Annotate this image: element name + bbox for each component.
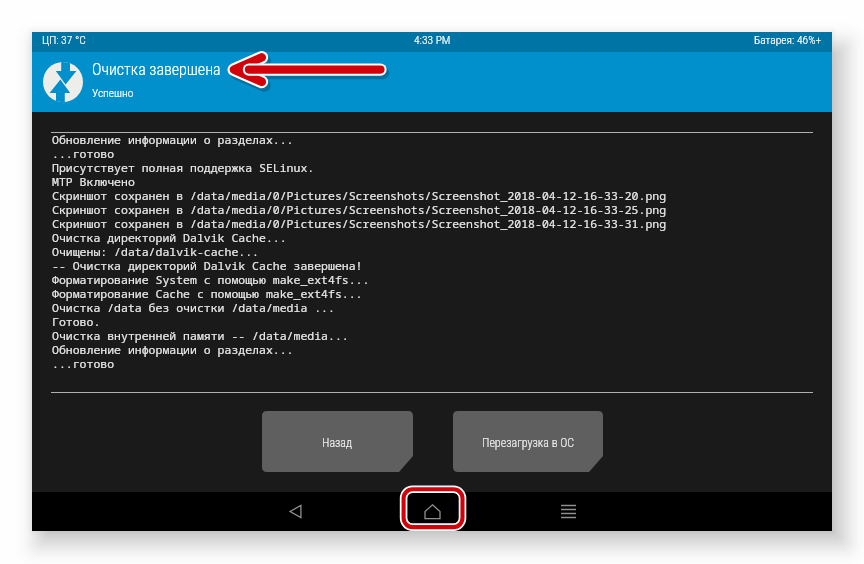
staticText: Назад: [322, 436, 353, 450]
staticText: Успешно: [92, 86, 134, 99]
staticText: Перезагрузка в ОС: [482, 436, 575, 450]
staticText: Батарея: 46%+: [754, 33, 822, 46]
staticText: Обновление информации о разделах... ...г…: [52, 133, 667, 371]
staticText: ЦП: 37 °C: [42, 33, 86, 46]
button[interactable]: Назад: [262, 411, 413, 472]
button[interactable]: Menu: [538, 492, 598, 531]
staticText: Очистка завершена: [92, 60, 221, 79]
button[interactable]: Back: [265, 492, 325, 531]
button[interactable]: Перезагрузка в ОС: [453, 411, 603, 472]
staticText: 4:33 PM: [414, 33, 451, 46]
button[interactable]: Home: [402, 492, 462, 531]
